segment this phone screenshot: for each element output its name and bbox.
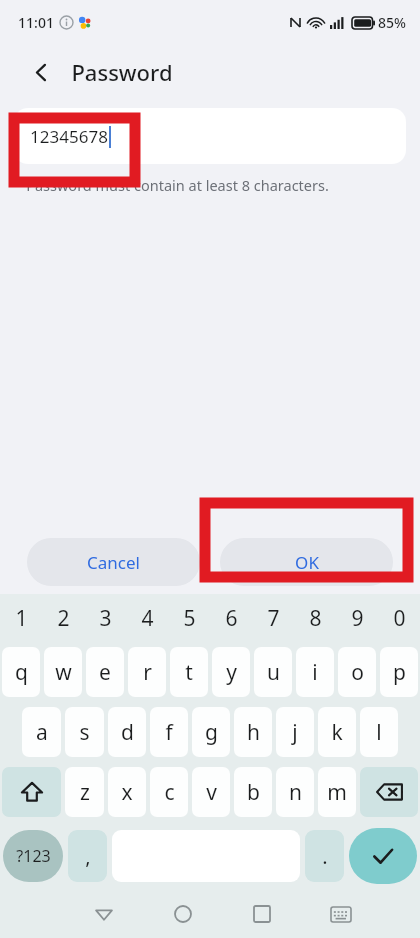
staticText: v: [206, 778, 217, 807]
button[interactable]: ?123: [3, 830, 63, 882]
staticText: s: [79, 718, 90, 747]
staticText: OK: [295, 551, 319, 574]
button[interactable]: ,: [68, 830, 107, 882]
staticText: 0: [393, 604, 406, 633]
staticText: h: [247, 718, 260, 747]
staticText: 1: [15, 604, 28, 633]
button[interactable]: a: [22, 707, 61, 757]
staticText: g: [205, 718, 218, 747]
staticText: u: [267, 658, 280, 687]
staticText: c: [164, 778, 175, 807]
staticText: a: [36, 718, 48, 747]
button[interactable]: x: [108, 767, 146, 817]
staticText: k: [331, 718, 343, 747]
staticText: Password must contain at least 8 charact…: [26, 175, 329, 195]
staticText: d: [121, 718, 134, 747]
button[interactable]: u: [254, 647, 292, 697]
button[interactable]: r: [128, 647, 166, 697]
button[interactable]: Back: [24, 55, 58, 89]
button[interactable]: n: [276, 767, 314, 817]
button[interactable]: q: [2, 647, 40, 697]
staticText: Cancel: [87, 551, 140, 574]
button[interactable]: k: [318, 707, 356, 757]
button[interactable]: Recents: [222, 892, 301, 936]
button[interactable]: i: [296, 647, 334, 697]
button[interactable]: e: [86, 647, 124, 697]
staticText: b: [247, 778, 260, 807]
staticText: t: [185, 658, 193, 687]
staticText: m: [327, 778, 347, 807]
button[interactable]: Hide keyboard: [301, 892, 380, 936]
button[interactable]: s: [65, 707, 104, 757]
staticText: l: [376, 718, 382, 747]
button[interactable]: Shift: [2, 767, 61, 817]
button[interactable]: y: [212, 647, 250, 697]
staticText: 4: [141, 604, 154, 633]
button[interactable]: w: [44, 647, 82, 697]
staticText: .: [322, 843, 328, 870]
staticText: q: [15, 658, 28, 687]
staticText: 7: [267, 604, 280, 633]
button[interactable]: b: [234, 767, 272, 817]
staticText: j: [292, 718, 298, 747]
staticText: o: [351, 658, 364, 687]
button[interactable]: 3: [84, 594, 126, 642]
staticText: n: [289, 778, 302, 807]
button[interactable]: Home: [143, 892, 222, 936]
staticText: 11:01: [18, 13, 54, 32]
staticText: 6: [225, 604, 238, 633]
button[interactable]: 9: [336, 594, 378, 642]
button[interactable]: 6: [210, 594, 252, 642]
button[interactable]: 12345678: [14, 108, 406, 164]
button[interactable]: 7: [252, 594, 294, 642]
staticText: i: [312, 658, 318, 687]
button[interactable]: c: [150, 767, 188, 817]
button[interactable]: Backspace: [360, 767, 418, 817]
button[interactable]: 8: [294, 594, 336, 642]
button[interactable]: j: [276, 707, 314, 757]
staticText: 8: [309, 604, 322, 633]
button[interactable]: 2: [42, 594, 84, 642]
staticText: ?123: [16, 845, 51, 867]
button[interactable]: t: [170, 647, 208, 697]
staticText: w: [55, 658, 72, 687]
staticText: y: [226, 658, 237, 687]
staticText: 12345678: [30, 125, 108, 148]
button[interactable]: 0: [378, 594, 420, 642]
staticText: p: [393, 658, 406, 687]
button[interactable]: 5: [168, 594, 210, 642]
button[interactable]: Cancel: [27, 538, 200, 586]
button[interactable]: z: [65, 767, 104, 817]
button[interactable]: d: [108, 707, 146, 757]
button[interactable]: 4: [126, 594, 168, 642]
staticText: 5: [183, 604, 196, 633]
button[interactable]: v: [192, 767, 230, 817]
button[interactable]: 1: [0, 594, 42, 642]
staticText: r: [143, 658, 152, 687]
button[interactable]: h: [234, 707, 272, 757]
staticText: Password: [71, 57, 173, 87]
button[interactable]: l: [360, 707, 398, 757]
staticText: 3: [99, 604, 112, 633]
button[interactable]: f: [150, 707, 188, 757]
button[interactable]: p: [380, 647, 418, 697]
button[interactable]: o: [338, 647, 376, 697]
staticText: f: [165, 718, 173, 747]
staticText: 9: [351, 604, 364, 633]
staticText: 85%: [378, 13, 406, 32]
button[interactable]: .: [305, 830, 344, 882]
staticText: 2: [57, 604, 70, 633]
staticText: ,: [85, 843, 91, 870]
staticText: x: [121, 778, 133, 807]
button[interactable]: Enter: [349, 828, 417, 884]
button[interactable]: m: [318, 767, 356, 817]
staticText: e: [99, 658, 111, 687]
staticText: z: [80, 778, 90, 807]
button[interactable]: Back: [64, 892, 143, 936]
button[interactable]: g: [192, 707, 230, 757]
button[interactable]: OK: [220, 538, 393, 586]
